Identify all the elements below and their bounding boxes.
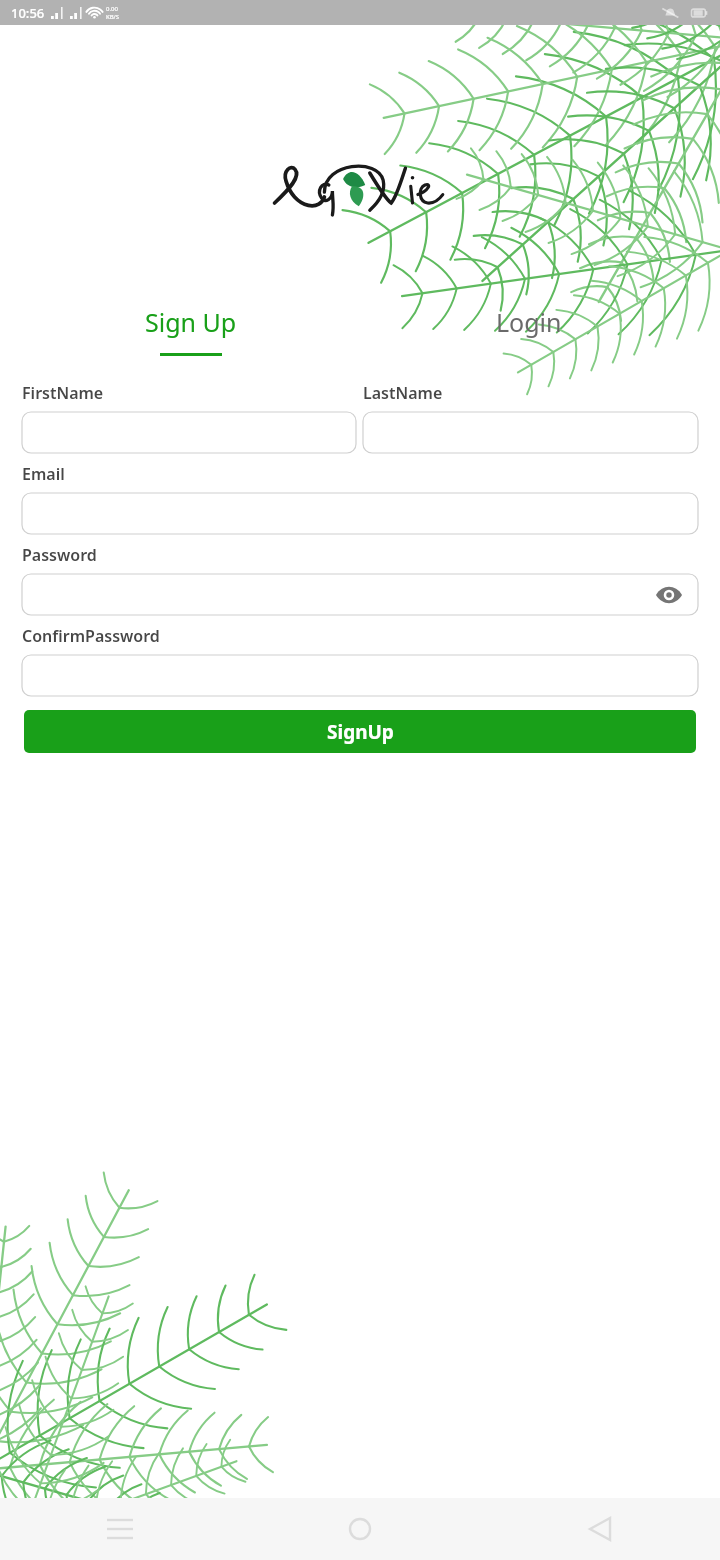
staticText: Password — [22, 544, 97, 566]
staticText: Email — [22, 463, 65, 485]
staticText: LastName — [363, 382, 443, 404]
button[interactable]: Sign Up — [22, 305, 360, 356]
button[interactable]: Show password — [654, 580, 684, 610]
button[interactable] — [363, 412, 698, 453]
staticText: Sign Up — [145, 305, 237, 339]
staticText: Login — [496, 305, 562, 339]
staticText: ConfirmPassword — [22, 625, 160, 647]
button[interactable]: Show password — [22, 574, 698, 615]
button[interactable] — [22, 412, 356, 453]
staticText: SignUp — [327, 719, 394, 745]
staticText: FirstName — [22, 382, 104, 404]
button[interactable]: Login — [360, 305, 698, 356]
button[interactable] — [22, 493, 698, 534]
staticText: KB/S — [106, 13, 120, 21]
button[interactable]: SignUp — [24, 710, 696, 753]
staticText: 10:56 — [11, 4, 45, 22]
staticText: 0.00 — [106, 5, 118, 13]
button[interactable] — [22, 655, 698, 696]
